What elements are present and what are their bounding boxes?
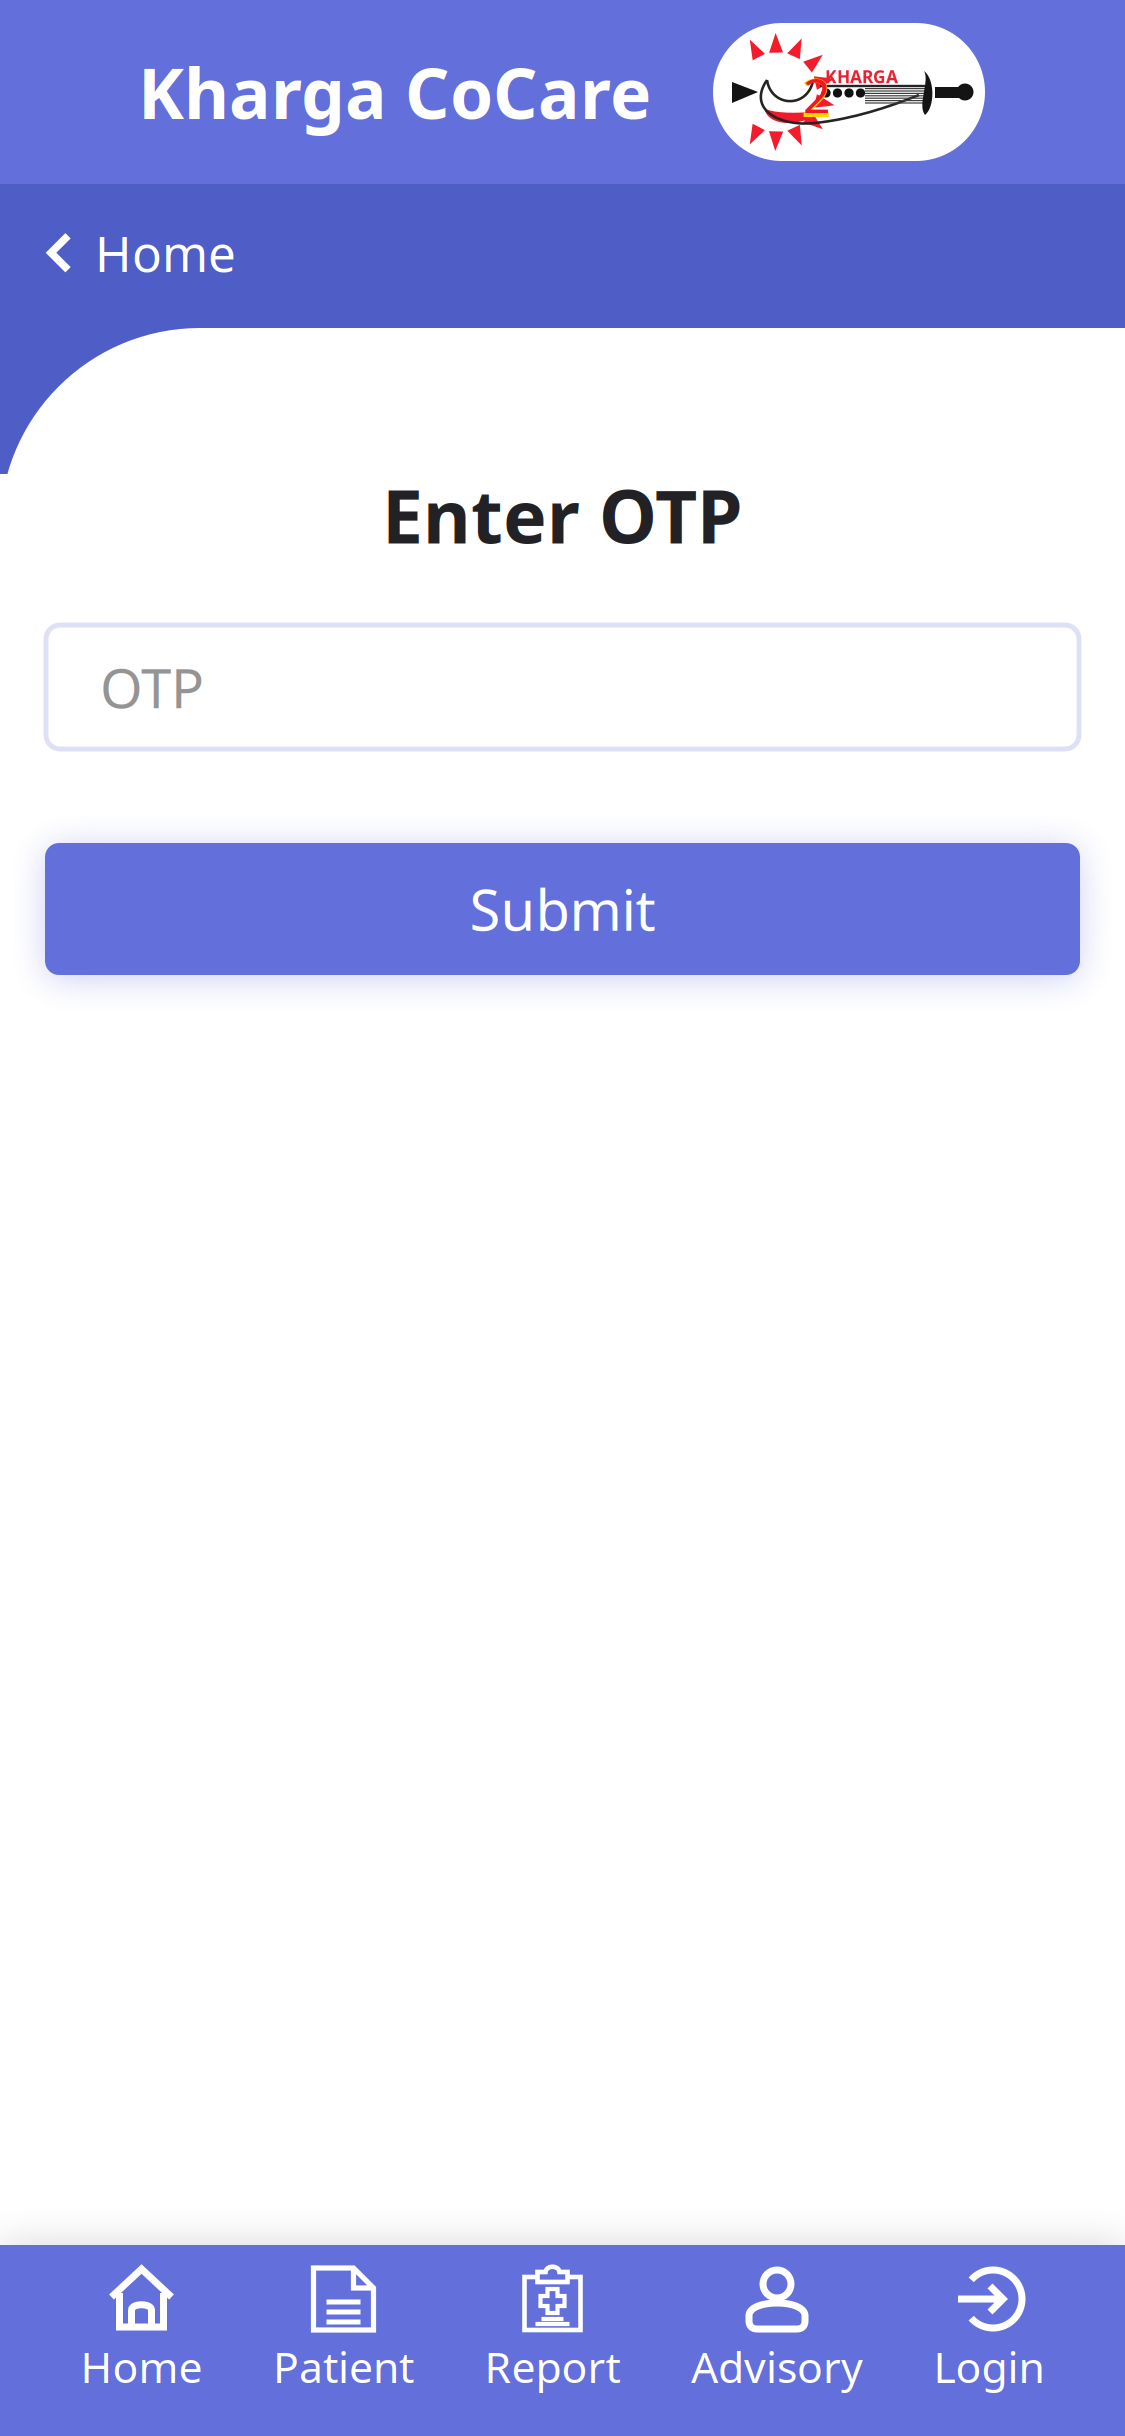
button[interactable]: Submit xyxy=(0,843,1125,975)
button[interactable]: Login xyxy=(933,2245,1044,2436)
staticText: Home xyxy=(80,2338,202,2395)
button[interactable]: OTP xyxy=(0,625,1125,749)
button[interactable]: Home xyxy=(80,2245,202,2436)
staticText: Login xyxy=(933,2338,1044,2395)
staticText: 2 xyxy=(801,61,832,132)
staticText: Enter OTP xyxy=(382,466,743,564)
staticText: Submit xyxy=(469,872,655,946)
staticText: 2 xyxy=(803,63,830,127)
button[interactable]: Report xyxy=(484,2245,620,2436)
staticText: Patient xyxy=(273,2338,414,2395)
staticText: KHARGA xyxy=(825,65,898,88)
button[interactable]: Patient xyxy=(273,2245,414,2436)
staticText: Report xyxy=(484,2338,620,2395)
staticText: Advisory xyxy=(691,2338,863,2395)
staticText: OTP xyxy=(100,651,204,723)
button[interactable]: Home xyxy=(0,196,270,309)
staticText: Home xyxy=(95,220,236,285)
staticText: Kharga CoCare xyxy=(138,46,651,138)
button[interactable]: Advisory xyxy=(691,2245,863,2436)
